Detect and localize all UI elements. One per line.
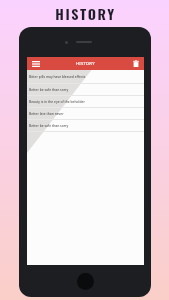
staticText: Better be safe than sorry [29, 87, 69, 91]
button[interactable]: Better be safe than sorry [27, 120, 144, 132]
staticText: Better be safe than sorry [29, 123, 69, 127]
button[interactable]: Delete history [129, 57, 142, 70]
button[interactable]: Open navigation menu [29, 57, 42, 70]
staticText: Bitter pills may have blessed effects [29, 74, 86, 78]
staticText: Beauty is in the eye of the beholder [29, 99, 85, 103]
staticText: HISTORY [76, 61, 95, 67]
button[interactable]: Beauty is in the eye of the beholder [27, 96, 144, 108]
staticText: HISTORY [1, 3, 169, 24]
staticText: Better late than never [29, 111, 64, 115]
button[interactable]: Bitter pills may have blessed effects [27, 70, 144, 84]
button[interactable]: Better late than never [27, 108, 144, 120]
button[interactable]: Better be safe than sorry [27, 84, 144, 96]
